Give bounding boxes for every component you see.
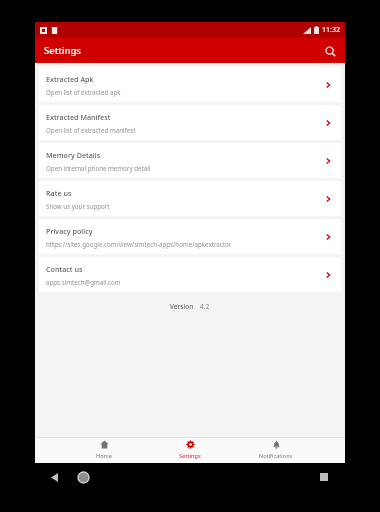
staticText: Settings — [44, 44, 81, 57]
staticText: 11:32 — [322, 25, 340, 35]
staticText: Rate us — [46, 188, 72, 198]
button[interactable]: Contact us — [39, 257, 341, 292]
button[interactable]: Home — [75, 437, 133, 463]
staticText: Extracted Apk — [46, 74, 94, 84]
staticText: Contact us — [46, 264, 83, 274]
staticText: Memory Details — [46, 150, 101, 160]
staticText: Open internal phone memory detail — [46, 164, 151, 172]
button[interactable]: Back — [43, 466, 65, 488]
staticText: Open list of extracted apk — [46, 88, 121, 96]
button[interactable]: Privacy policy — [39, 219, 341, 254]
staticText: apps.simtech@gmail.com — [46, 278, 121, 286]
staticText: Home — [96, 452, 112, 460]
button[interactable]: Rate us — [39, 181, 341, 216]
staticText: Privacy policy — [46, 226, 93, 236]
button[interactable]: Recent apps — [313, 466, 335, 488]
staticText: Extracted Manifest — [46, 112, 111, 122]
button[interactable]: Notifications — [247, 437, 305, 463]
button[interactable]: Extracted Manifest — [39, 105, 341, 140]
staticText: Settings — [179, 452, 201, 460]
button[interactable]: Home — [71, 465, 95, 489]
button[interactable]: Memory Details — [39, 143, 341, 178]
staticText: 4.2 — [200, 302, 210, 311]
staticText: Version — [170, 302, 194, 311]
staticText: Notifications — [259, 452, 293, 460]
button[interactable]: Search — [320, 41, 340, 61]
staticText: Open list of extracted manifest — [46, 126, 136, 134]
staticText: https://sites.google.com/view/simtech-ap… — [46, 240, 232, 248]
staticText: Show us your support — [46, 202, 110, 210]
button[interactable]: Extracted Apk — [39, 67, 341, 102]
button[interactable]: Settings — [161, 437, 219, 463]
